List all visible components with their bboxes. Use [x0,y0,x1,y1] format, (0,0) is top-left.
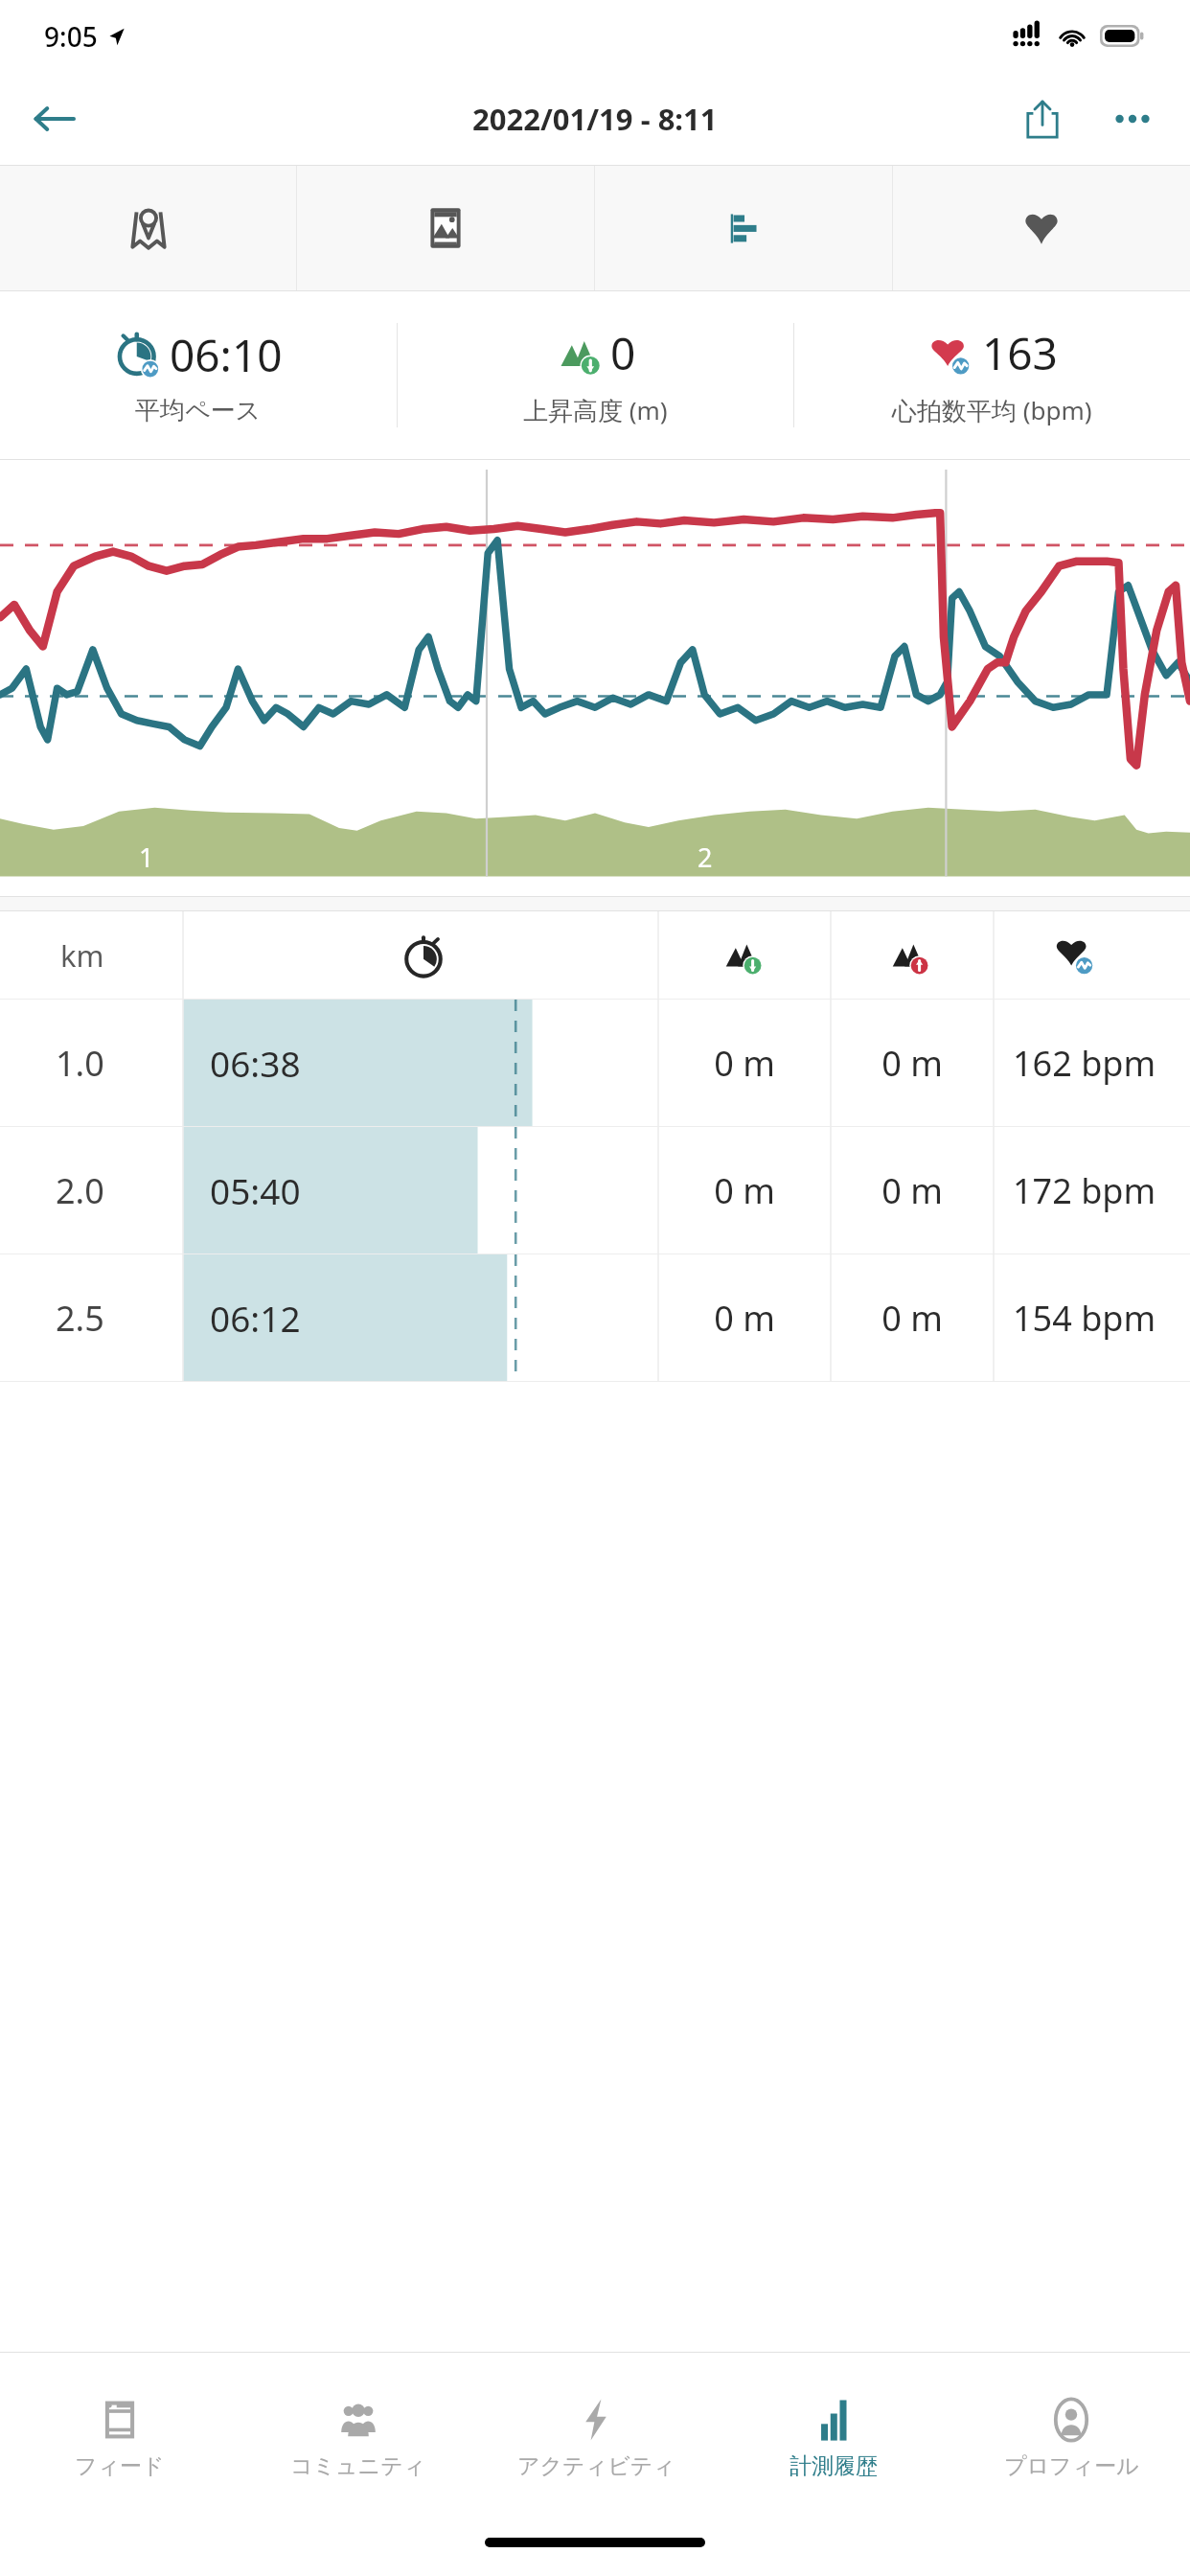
other: Heart rate [1052,932,1098,978]
button[interactable]: 06:10 [0,291,397,459]
staticText: 163 [982,323,1058,383]
staticText: 0 m [714,1167,775,1214]
staticText: 2.5 [56,1295,104,1342]
staticText: フィード [75,2452,165,2480]
button[interactable]: コミュニティ [239,2353,477,2520]
staticText: 162 bpm [1013,1040,1156,1087]
button[interactable]: 2.5 [0,1254,1190,1381]
staticText: 0 m [881,1040,943,1087]
staticText: 1 [139,839,154,875]
staticText: 0 m [881,1167,943,1214]
button[interactable]: Map [0,166,296,290]
staticText: 0 [610,323,636,383]
button[interactable]: フィード [0,2353,239,2520]
staticText: 172 bpm [1013,1167,1156,1214]
other: Elevation loss [887,932,933,978]
button[interactable]: 0 [398,291,793,459]
staticText: 1.0 [56,1040,104,1087]
button[interactable]: More options [1096,82,1169,155]
other: Pace [400,932,446,978]
staticText: 2 [698,839,713,875]
button[interactable]: Photos [297,166,594,290]
button[interactable]: Back [19,84,88,153]
staticText: 0 m [714,1295,775,1342]
button[interactable]: Share [1006,82,1079,155]
staticText: 0 m [881,1295,943,1342]
other: Elevation gain [721,932,767,978]
staticText: 計測履歴 [790,2452,878,2480]
button[interactable]: 1.0 [0,1000,1190,1126]
button[interactable]: Heart rate [893,166,1190,290]
staticText: 上昇高度 (m) [523,393,668,427]
staticText: 0 m [714,1040,775,1087]
staticText: 平均ペース [135,395,262,426]
staticText: 2.0 [56,1167,104,1214]
button[interactable]: Charts [595,166,892,290]
staticText: プロフィール [1004,2452,1139,2480]
staticText: 9:05 [44,18,98,55]
staticText: 2022/01/19 - 8:11 [472,99,718,139]
staticText: 06:38 [210,1039,301,1087]
staticText: 05:40 [210,1166,301,1214]
staticText: アクティビティ [517,2452,675,2480]
staticText: コミュニティ [290,2452,426,2480]
staticText: km [60,935,104,976]
button[interactable]: 2.0 [0,1127,1190,1253]
staticText: 06:12 [210,1294,301,1342]
button[interactable]: アクティビティ [477,2353,715,2520]
staticText: 心拍数平均 (bpm) [892,393,1092,427]
button[interactable]: 163 [794,291,1190,459]
staticText: 154 bpm [1013,1295,1156,1342]
button[interactable]: 計測履歴 [715,2353,952,2520]
button[interactable]: プロフィール [952,2353,1190,2520]
staticText: 06:10 [170,325,283,385]
